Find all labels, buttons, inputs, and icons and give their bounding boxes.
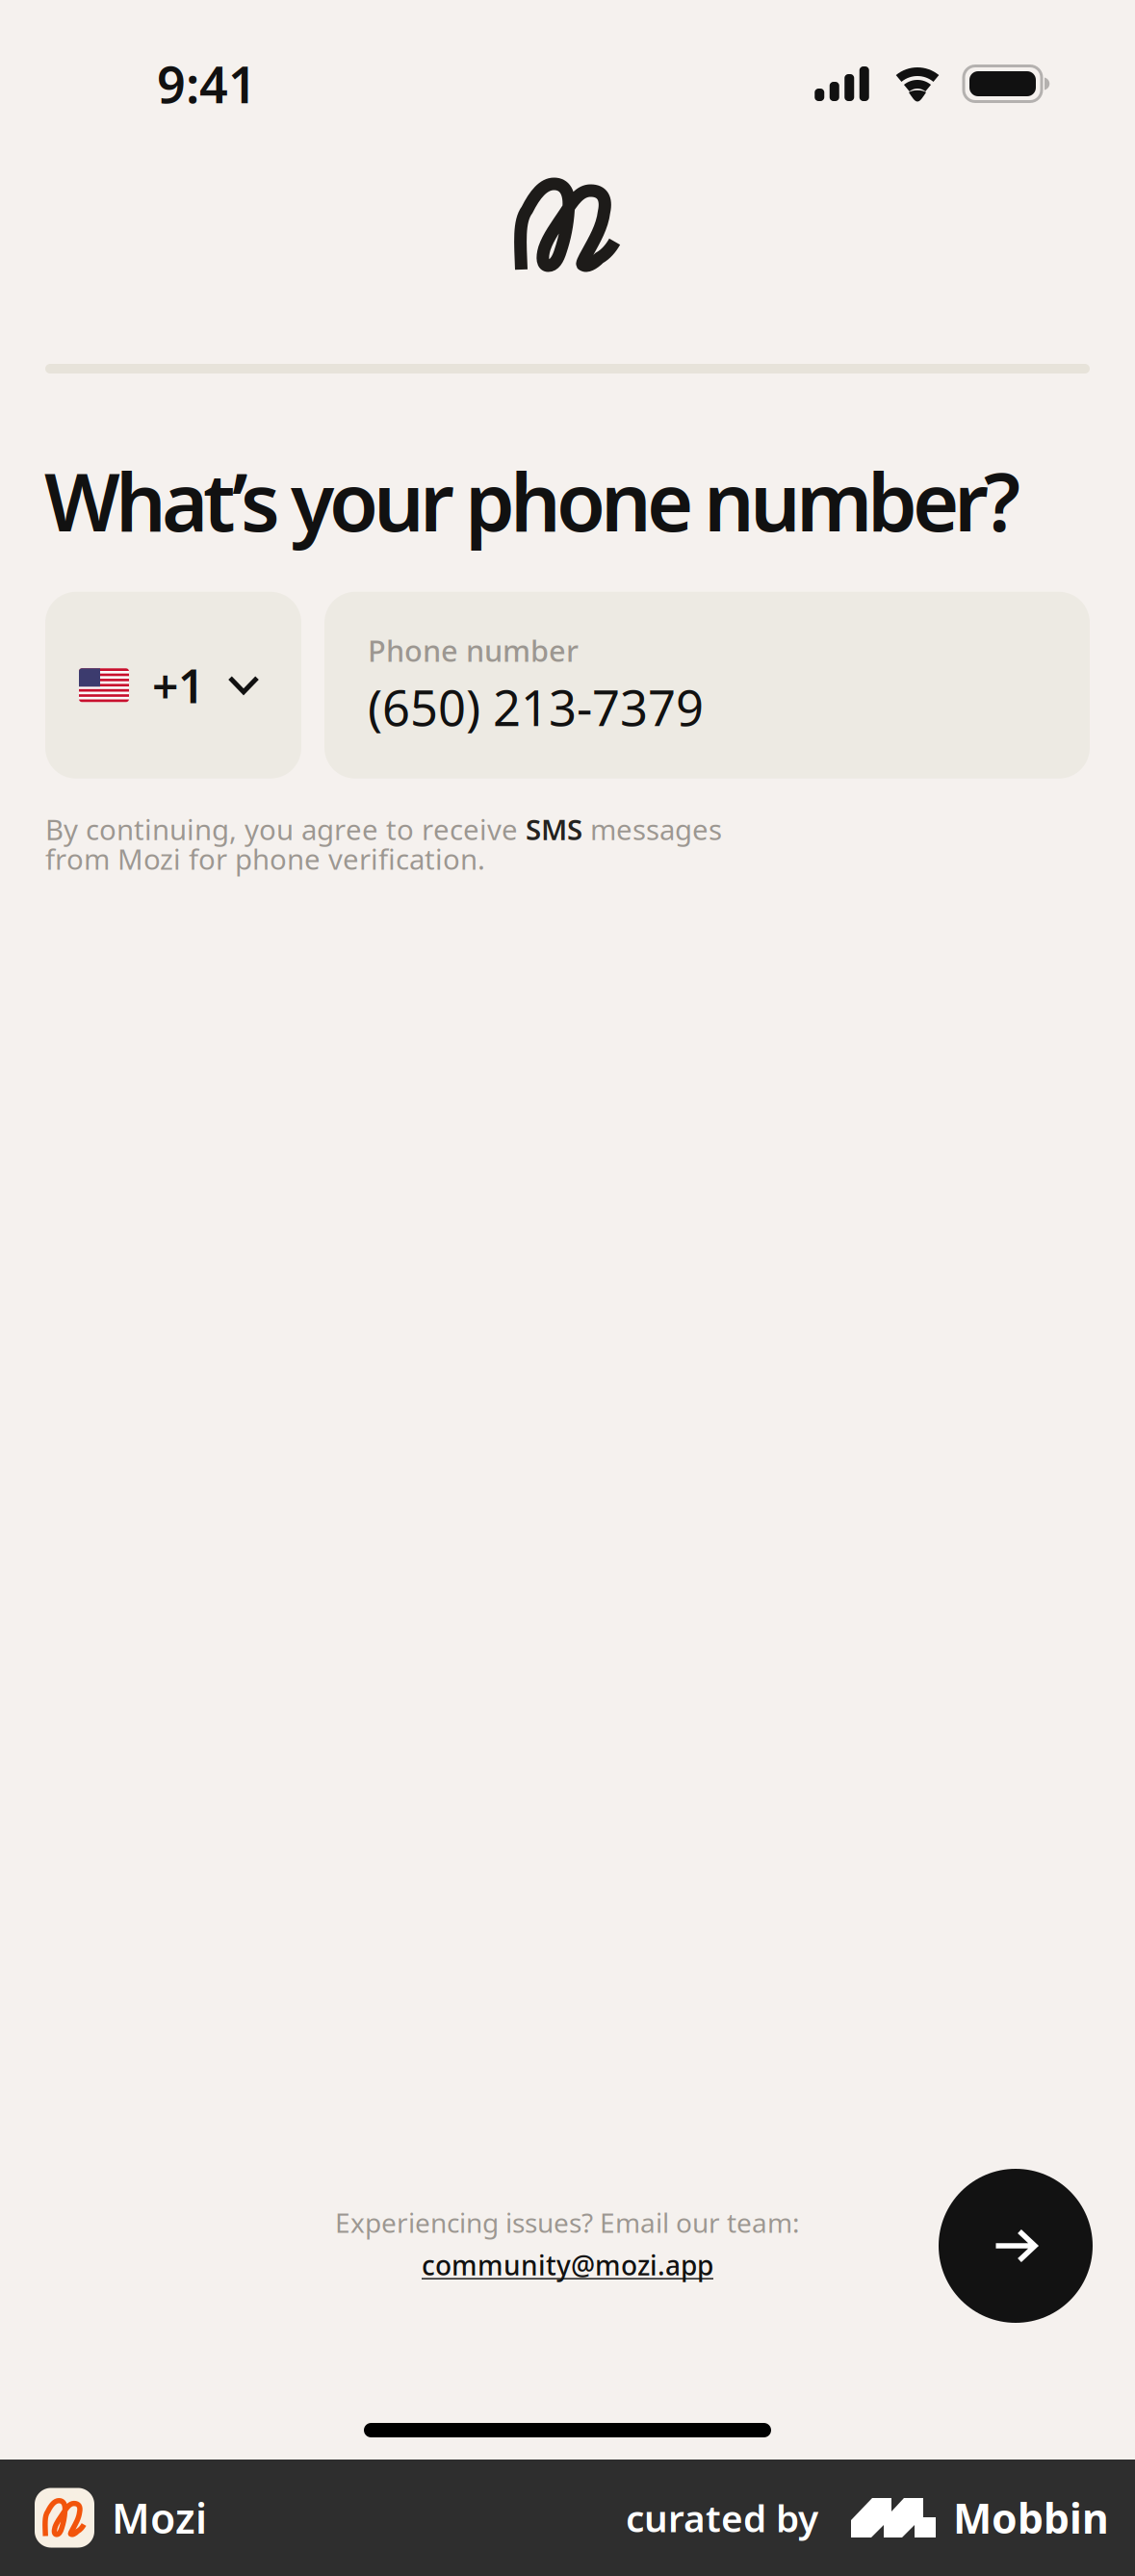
staticText: Experiencing issues? Email our team: — [335, 2204, 800, 2240]
staticText: curated by — [626, 2493, 818, 2542]
staticText: What’s your phone number? — [44, 448, 1020, 553]
button[interactable]: Continue — [939, 2169, 1093, 2323]
staticText: messages — [582, 810, 722, 848]
staticText: from Mozi for phone verification. — [45, 840, 485, 878]
staticText: (650) 213-7379 — [368, 675, 704, 740]
staticText: community@mozi.app — [422, 2247, 713, 2283]
staticText: By continuing, you agree to receive — [45, 810, 526, 848]
staticText: Phone number — [368, 631, 579, 670]
button[interactable]: Country code, United States, plus 1 — [45, 592, 301, 779]
staticText: +1 — [152, 654, 204, 716]
button[interactable]: Phone number — [324, 592, 1090, 779]
staticText: Mozi — [112, 2491, 207, 2545]
staticText: SMS — [526, 810, 582, 848]
staticText: 9:41 — [157, 51, 257, 117]
staticText: Mobbin — [953, 2491, 1109, 2545]
button[interactable]: community@mozi.app — [422, 2240, 713, 2283]
